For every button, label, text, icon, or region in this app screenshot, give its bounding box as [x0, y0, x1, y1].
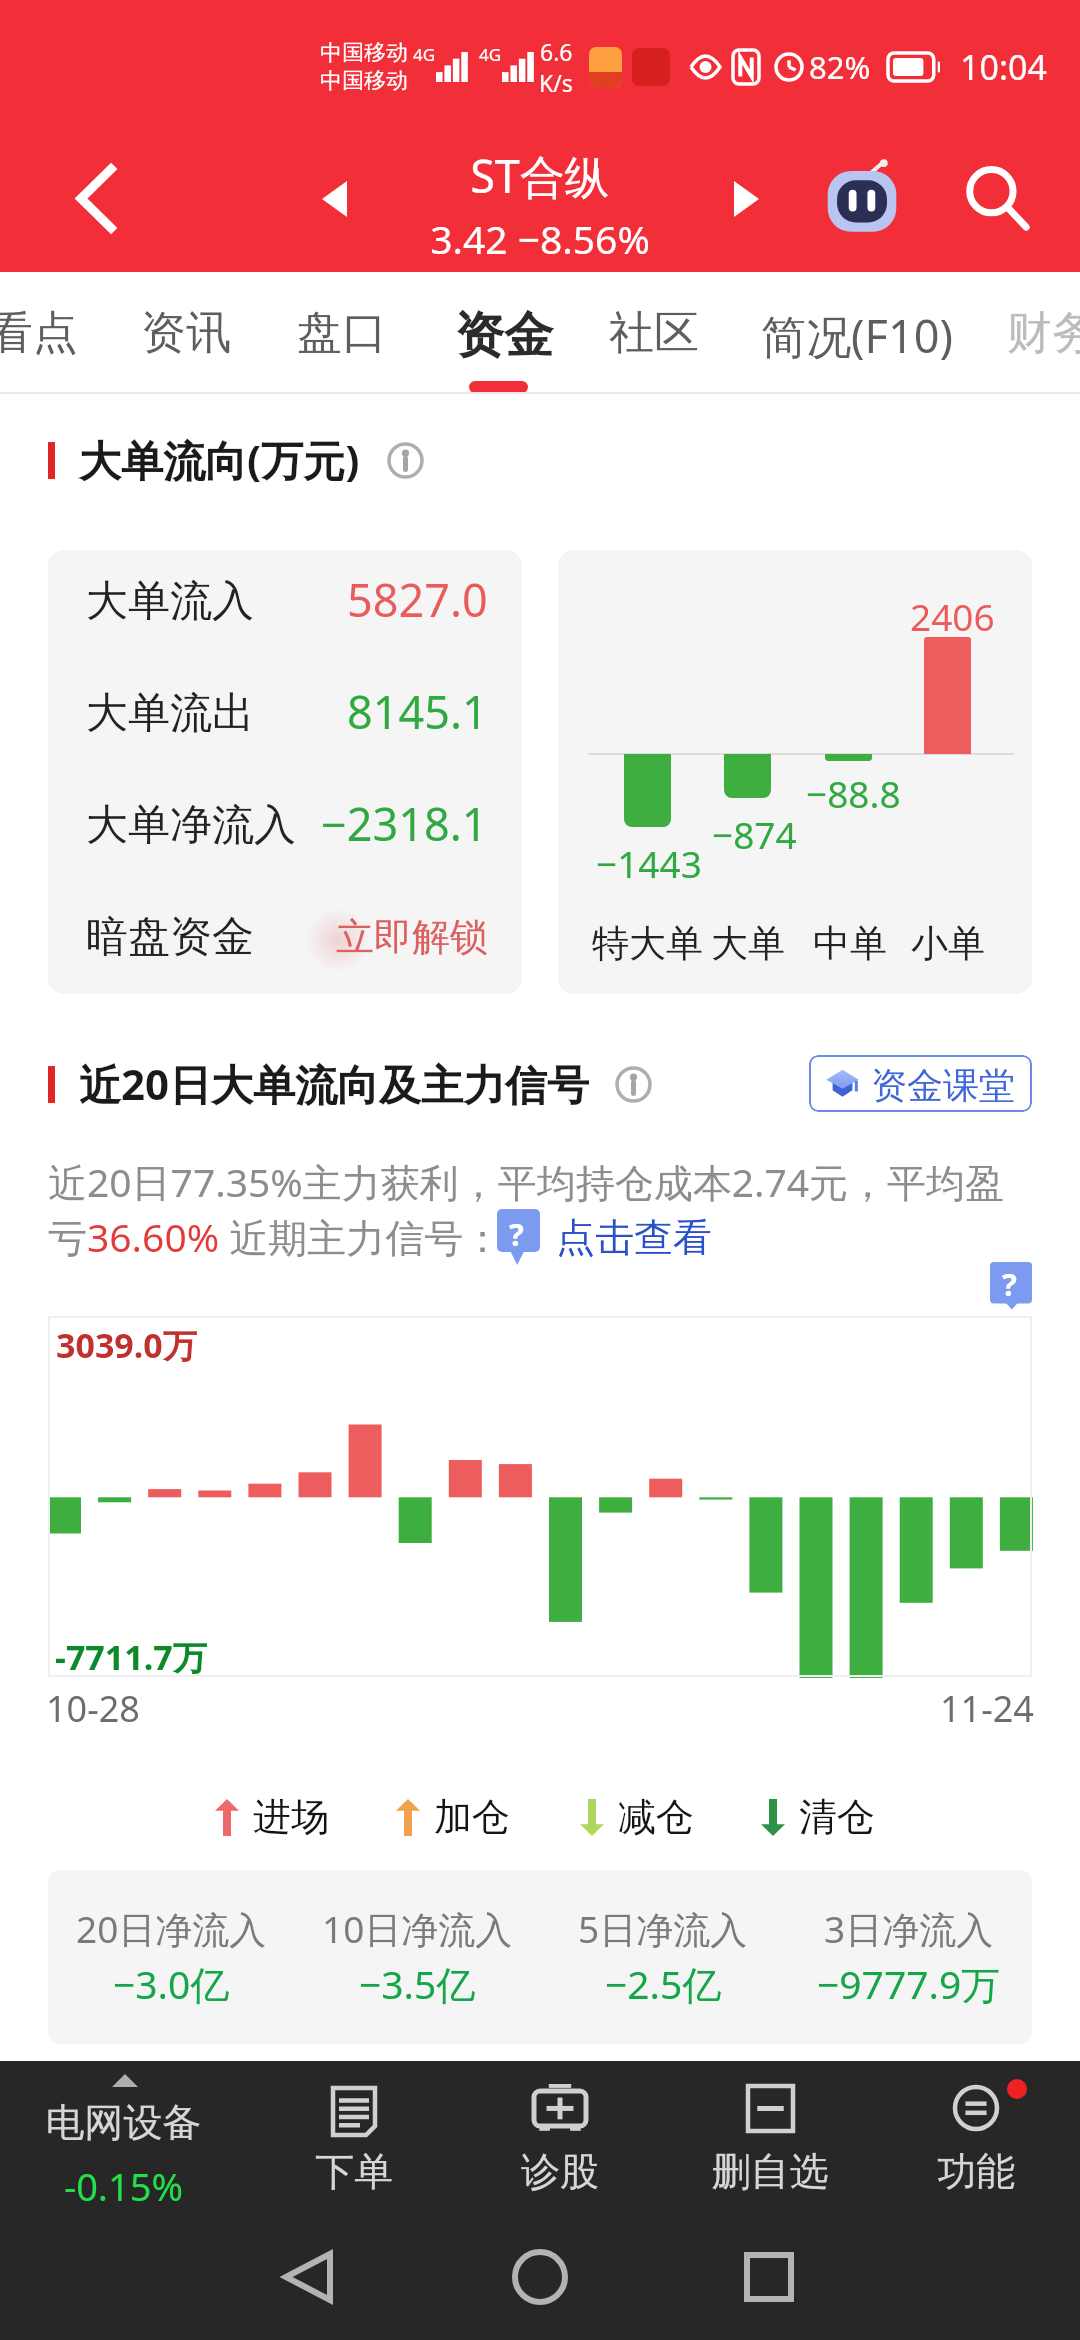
staticText: 10-28	[46, 1684, 140, 1733]
button[interactable]: Back	[258, 2227, 358, 2327]
button[interactable]: 简况(F10)	[741, 272, 973, 393]
staticText: ?	[509, 1213, 524, 1255]
staticText: 电网设备	[20, 2098, 227, 2147]
staticText: 4G	[413, 43, 436, 66]
staticText: 5日净流入	[578, 1903, 748, 1954]
button[interactable]: Home	[490, 2227, 590, 2327]
button[interactable]: 删自选	[670, 2061, 870, 2221]
staticText: 加仓	[434, 1793, 510, 1841]
staticText: 资讯	[122, 305, 250, 362]
staticText: 特大单	[592, 920, 703, 967]
button[interactable]: 诊股	[460, 2061, 660, 2221]
staticText: 下单	[254, 2147, 454, 2196]
staticText: 立即解锁	[336, 913, 488, 961]
button[interactable]: 资金	[440, 272, 568, 393]
staticText: −3.0亿	[113, 1957, 230, 2010]
staticText: 暗盘资金	[86, 911, 254, 964]
staticText: 点击查看	[556, 1213, 712, 1262]
staticText: 中国移动	[320, 67, 408, 95]
staticText: −2.5亿	[605, 1957, 722, 2010]
staticText: 3日净流入	[824, 1903, 994, 1954]
staticText: 82%	[809, 46, 871, 88]
staticText: K/s	[539, 67, 573, 98]
button[interactable]: Search	[942, 125, 1052, 272]
staticText: 大单净流入	[86, 799, 296, 852]
staticText: 盘口	[278, 305, 406, 362]
button[interactable]: 进场	[215, 1793, 329, 1841]
button[interactable]: 20日净流入	[48, 1870, 1032, 2044]
staticText: 看点	[0, 305, 97, 362]
button[interactable]: 社区	[590, 272, 718, 393]
staticText: 大单流向(万元)	[79, 431, 360, 488]
button[interactable]: 资金课堂	[809, 1055, 1032, 1112]
button[interactable]: Next stock	[691, 125, 801, 272]
staticText: 进场	[253, 1793, 329, 1841]
staticText: 4G	[479, 43, 502, 66]
staticText: 大单流出	[86, 687, 254, 740]
staticText: 3039.0万	[56, 1322, 197, 1368]
staticText: 清仓	[799, 1793, 875, 1841]
staticText: -0.15%	[20, 2160, 227, 2212]
button[interactable]: 下单	[254, 2061, 454, 2221]
staticText: 社区	[590, 305, 718, 362]
staticText: −1443	[596, 838, 702, 888]
button[interactable]: 看点	[0, 272, 97, 393]
button[interactable]: 清仓	[761, 1793, 875, 1841]
button[interactable]: Previous stock	[279, 125, 389, 272]
staticText: 近20日77.35%主力获利，平均持仓成本2.74元，平均盈亏36.60% 近期…	[48, 1155, 1033, 1263]
staticText: 中国移动	[320, 39, 408, 67]
staticText: 5827.0	[347, 569, 488, 630]
staticText: 10日净流入	[322, 1903, 513, 1954]
staticText: −874	[712, 809, 797, 859]
staticText: 8145.1	[347, 681, 488, 742]
button[interactable]: 财务	[988, 272, 1080, 393]
button[interactable]: AI assistant	[812, 125, 912, 272]
button[interactable]: Signal help	[497, 1209, 540, 1265]
staticText: −3.5亿	[359, 1957, 476, 2010]
staticText: 资金课堂	[871, 1063, 1015, 1108]
staticText: 近20日大单流向及主力信号	[79, 1055, 590, 1112]
staticText: 减仓	[618, 1793, 694, 1841]
staticText: 大单	[711, 920, 785, 967]
staticText: −2318.1	[321, 793, 488, 854]
button[interactable]: Info	[384, 439, 426, 481]
button[interactable]: Recents	[719, 2227, 819, 2327]
staticText: ST合纵	[0, 145, 1080, 206]
button[interactable]: 功能	[876, 2061, 1076, 2221]
button[interactable]: 盘口	[278, 272, 406, 393]
staticText: -7711.7万	[55, 1634, 207, 1680]
staticText: 诊股	[460, 2147, 660, 2196]
button[interactable]: 减仓	[580, 1793, 694, 1841]
staticText: 删自选	[670, 2147, 870, 2196]
button[interactable]: 资讯	[122, 272, 250, 393]
button[interactable]: Chart help	[990, 1262, 1032, 1310]
button[interactable]: Back	[26, 125, 166, 272]
button[interactable]: 加仓	[396, 1793, 510, 1841]
staticText: 资金	[440, 305, 568, 367]
button[interactable]: Info	[612, 1063, 654, 1105]
button[interactable]: 大单流入	[48, 550, 522, 994]
button[interactable]: 点击查看	[556, 1213, 712, 1262]
button[interactable]: 2406	[558, 550, 1032, 994]
staticText: −9777.9万	[817, 1957, 1001, 2010]
staticText: 11-24	[940, 1684, 1034, 1733]
staticText: 大单流入	[86, 575, 254, 628]
staticText: 6.6	[540, 36, 573, 67]
staticText: −88.8	[806, 768, 901, 818]
staticText: 2406	[910, 591, 995, 641]
staticText: 3.42 −8.56%	[0, 212, 1080, 265]
staticText: 20日净流入	[76, 1903, 267, 1954]
button[interactable]: 立即解锁	[48, 913, 488, 961]
button[interactable]: 电网设备	[20, 2061, 227, 2221]
staticText: 财务	[988, 305, 1080, 362]
staticText: 简况(F10)	[741, 305, 973, 366]
staticText: ?	[1002, 1263, 1017, 1305]
staticText: 小单	[911, 920, 985, 967]
staticText: 功能	[876, 2147, 1076, 2196]
staticText: 10:04	[960, 44, 1047, 90]
staticText: 中单	[813, 920, 887, 967]
